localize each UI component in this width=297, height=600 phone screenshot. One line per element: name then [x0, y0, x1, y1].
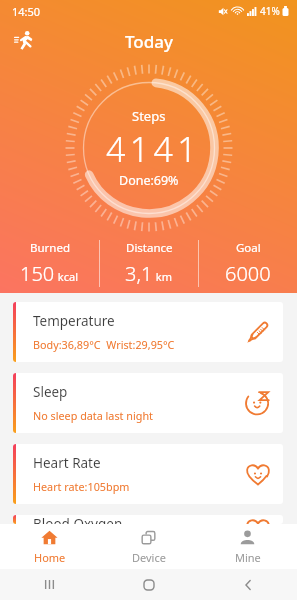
staticText: Mine — [235, 550, 261, 565]
button[interactable]: Activity — [12, 29, 36, 53]
button[interactable]: Mine — [198, 524, 297, 569]
staticText: Home — [34, 550, 66, 565]
staticText: km — [153, 269, 173, 284]
button[interactable]: Heart Rate — [13, 444, 283, 504]
staticText: Device — [132, 550, 166, 565]
staticText: Temperature — [33, 312, 115, 330]
button[interactable]: Sleep — [13, 373, 283, 433]
staticText: No sleep data last night — [33, 408, 153, 423]
staticText: Burned — [30, 240, 70, 256]
staticText: 150 — [20, 260, 55, 287]
staticText: Today — [125, 30, 173, 53]
staticText: Goal — [236, 240, 261, 256]
staticText: Sleep — [33, 383, 68, 401]
staticText: 41% — [260, 4, 280, 18]
staticText: Heart Rate — [33, 454, 101, 472]
button[interactable]: Home — [0, 524, 99, 569]
staticText: Body:36,89°C Wrist:29,95°C — [33, 337, 175, 352]
button[interactable]: Recents — [0, 569, 99, 600]
staticText: kcal — [55, 269, 79, 284]
staticText: Distance — [126, 240, 173, 256]
button[interactable]: Blood Oxygen — [13, 515, 283, 524]
button[interactable]: Distance — [100, 240, 198, 287]
button[interactable]: Goal — [199, 240, 297, 287]
staticText: 4141 — [106, 126, 201, 172]
staticText: 14:50 — [12, 4, 41, 19]
button[interactable]: Device — [99, 524, 198, 569]
button[interactable]: Burned — [0, 240, 99, 287]
button[interactable]: Home — [99, 569, 198, 600]
staticText: 6000 — [225, 260, 271, 287]
staticText: 3,1 — [125, 260, 153, 287]
staticText: Heart rate:105bpm — [33, 479, 130, 494]
button[interactable]: Back — [198, 569, 297, 600]
staticText: Blood Oxygen — [33, 515, 123, 524]
staticText: Done:69% — [119, 172, 179, 189]
button[interactable]: Temperature — [13, 302, 283, 362]
staticText: Steps — [132, 107, 166, 125]
